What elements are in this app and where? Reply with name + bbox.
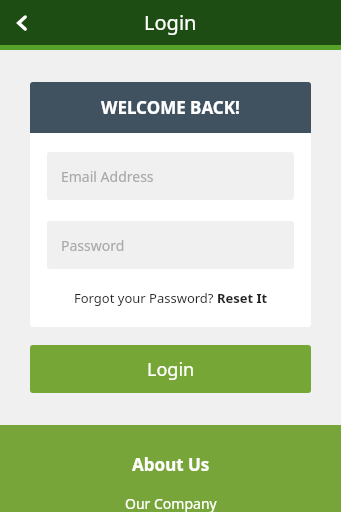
button[interactable]: Login <box>30 345 311 393</box>
button[interactable]: Forgot your Password? Reset It <box>30 285 311 311</box>
staticText: Email Address <box>61 167 154 186</box>
button[interactable]: Password <box>47 221 294 269</box>
staticText: WELCOME BACK! <box>101 96 240 119</box>
staticText: Login <box>144 9 197 36</box>
button[interactable]: About Us <box>132 453 210 476</box>
staticText: Our Company <box>125 494 217 512</box>
staticText: Password <box>61 236 125 255</box>
staticText: About Us <box>132 453 210 476</box>
staticText: Forgot your Password? Reset It <box>74 289 268 307</box>
button[interactable]: Back <box>0 1 44 45</box>
button[interactable]: Email Address <box>47 152 294 200</box>
button[interactable]: Our Company <box>125 494 217 512</box>
staticText: Login <box>147 357 195 382</box>
